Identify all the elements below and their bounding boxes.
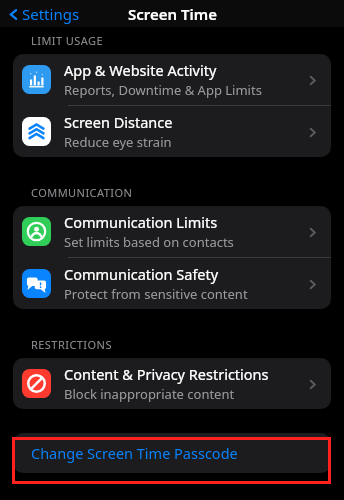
staticText: RESTRICTIONS xyxy=(31,337,112,352)
button[interactable]: Back xyxy=(5,2,82,26)
button[interactable]: Screen Distance xyxy=(13,106,331,157)
staticText: Reports, Downtime & App Limits xyxy=(64,81,262,99)
button[interactable]: Content & Privacy Restrictions xyxy=(13,358,331,409)
other: Communication Limits xyxy=(301,221,323,243)
button[interactable]: App & Website Activity xyxy=(13,54,331,106)
staticText: App & Website Activity xyxy=(64,60,217,80)
staticText: Settings xyxy=(22,4,80,24)
staticText: Screen Time xyxy=(128,4,217,24)
other: Content & Privacy Restrictions xyxy=(301,373,323,395)
button[interactable]: Communication Limits xyxy=(13,206,331,258)
staticText: Set limits based on contacts xyxy=(64,233,234,251)
other: Back xyxy=(7,8,20,21)
staticText: COMMUNICATION xyxy=(31,185,133,200)
button[interactable]: Communication Safety xyxy=(13,258,331,309)
staticText: Content & Privacy Restrictions xyxy=(64,364,269,384)
staticText: Change Screen Time Passcode xyxy=(31,443,238,463)
other: App & Website Activity xyxy=(301,69,323,91)
staticText: Communication Safety xyxy=(64,264,219,284)
staticText: Screen Distance xyxy=(64,112,173,132)
staticText: LIMIT USAGE xyxy=(31,33,104,48)
button[interactable]: Change Screen Time Passcode xyxy=(13,433,331,473)
other: Screen Distance xyxy=(301,121,323,143)
staticText: Block inappropriate content xyxy=(64,385,235,403)
other: Communication Safety xyxy=(301,273,323,295)
staticText: Protect from sensitive content xyxy=(64,285,248,303)
staticText: Reduce eye strain xyxy=(64,133,172,151)
staticText: Communication Limits xyxy=(64,212,218,232)
